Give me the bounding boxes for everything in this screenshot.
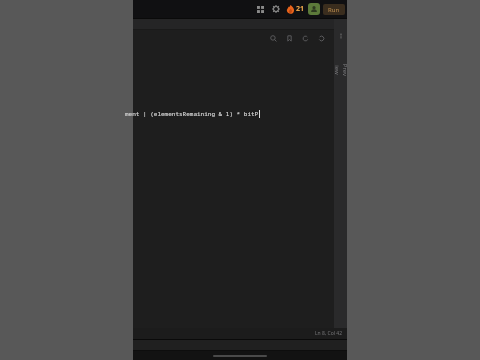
staticText: ment | (elementsRemaining & 1) * bitP [125,110,259,118]
staticText: Run [328,6,340,14]
button[interactable]: Search [268,33,279,44]
button[interactable]: Profile [308,3,320,15]
button[interactable]: Preview [334,44,347,96]
button[interactable]: Undo [300,33,311,44]
staticText: Preview [332,63,348,76]
button[interactable]: Run [323,4,345,15]
button[interactable]: More options [334,31,347,40]
button[interactable]: Redo [316,33,327,44]
button[interactable]: Settings [269,2,283,16]
button[interactable]: 21 [286,0,305,18]
button[interactable]: Bookmark [284,33,295,44]
button[interactable]: Layout [253,2,267,16]
staticText: Ln 8, Col 42 [315,330,343,337]
button[interactable]: ment | (elementsRemaining & 1) * bitP [125,109,260,118]
staticText: 21 [296,4,305,14]
